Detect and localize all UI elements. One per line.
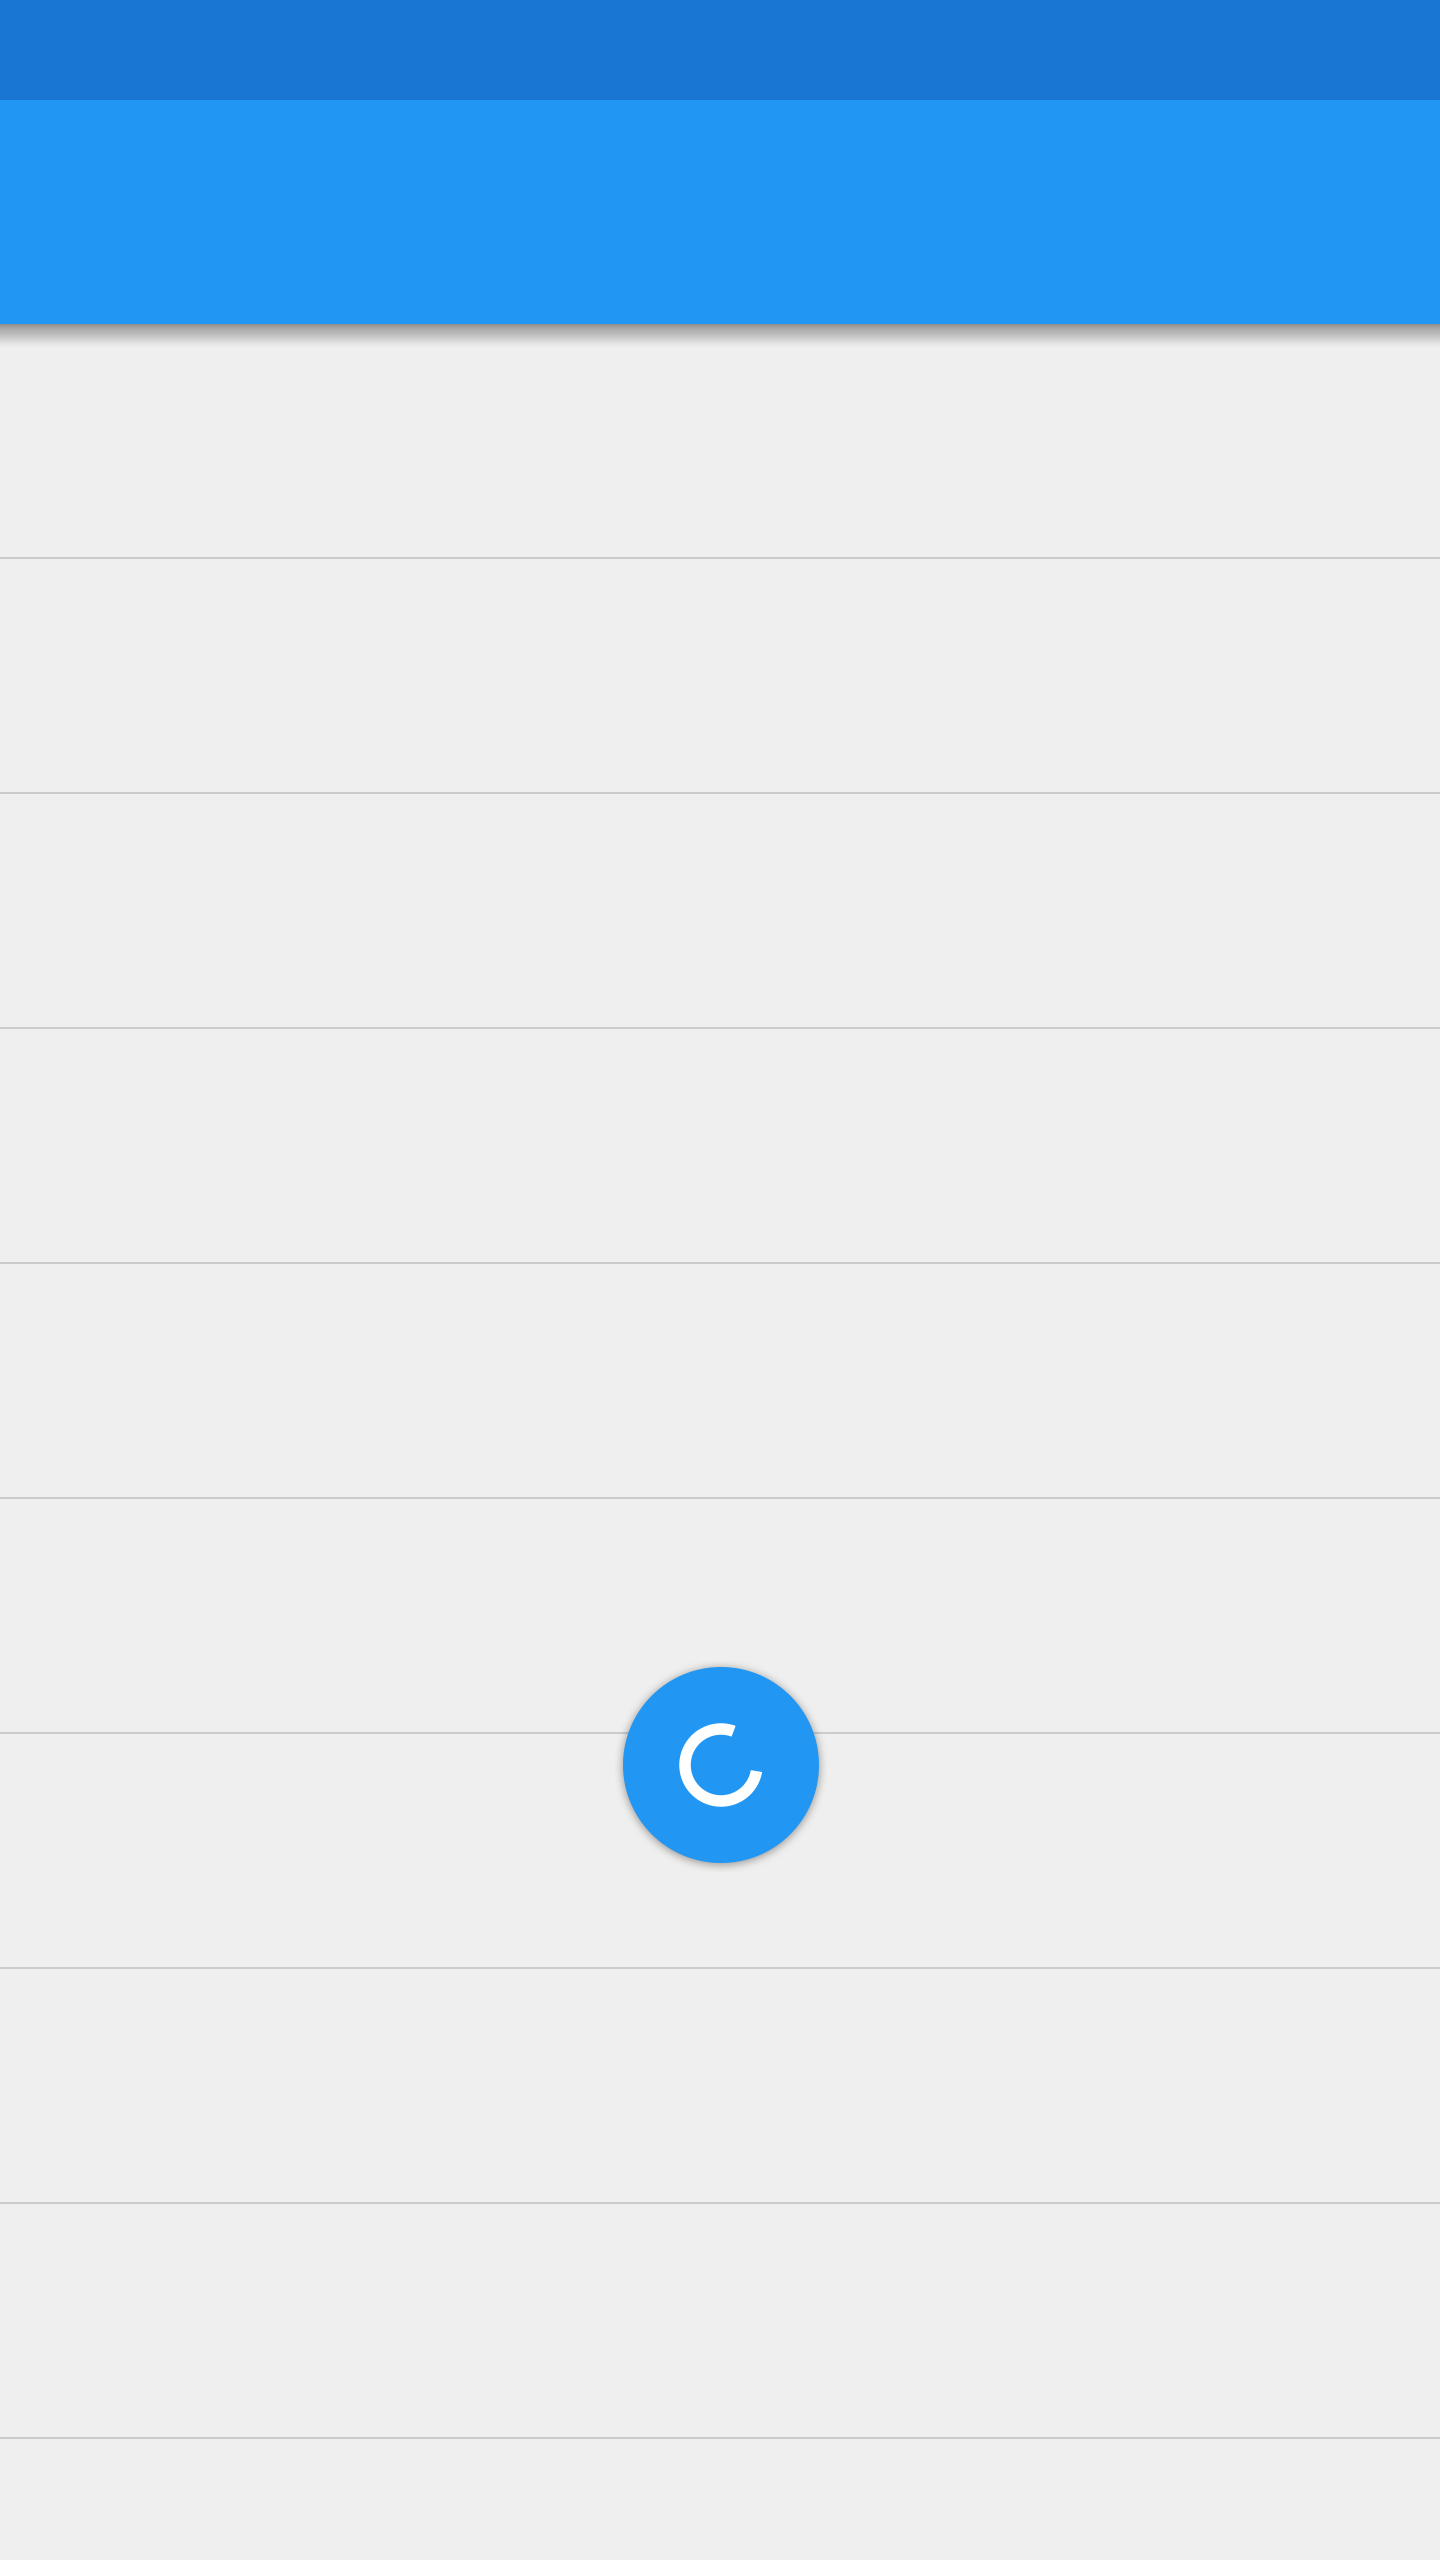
- button[interactable]: Loading item: [0, 559, 1440, 794]
- button[interactable]: Loading item: [0, 1029, 1440, 1264]
- button[interactable]: Loading item: [0, 1264, 1440, 1499]
- button[interactable]: Loading item: [0, 794, 1440, 1029]
- button[interactable]: Loading: [623, 1667, 819, 1863]
- button[interactable]: Loading item: [0, 1969, 1440, 2204]
- button[interactable]: Loading item: [0, 324, 1440, 559]
- button[interactable]: Loading item: [0, 2204, 1440, 2439]
- button[interactable]: Loading item: [0, 1734, 1440, 1969]
- button[interactable]: Loading item: [0, 1499, 1440, 1734]
